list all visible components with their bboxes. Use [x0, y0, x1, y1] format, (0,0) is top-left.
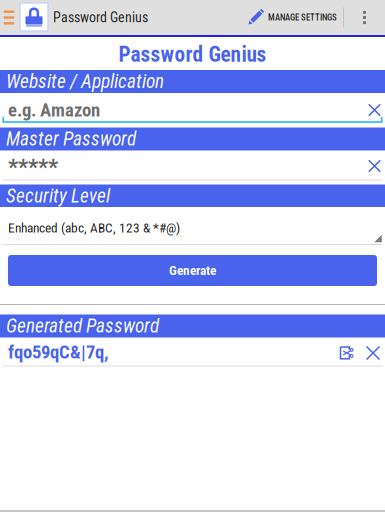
staticText: Generated Password [6, 315, 159, 337]
button[interactable]: MANAGE SETTINGS [248, 0, 354, 35]
staticText: Master Password [6, 128, 136, 150]
button[interactable]: Enhanced (abc, ABC, 123 & *#@) [0, 207, 385, 244]
button[interactable]: Open navigation drawer [0, 0, 18, 35]
button[interactable]: Generate [8, 255, 377, 286]
staticText: Website / Application [6, 70, 164, 93]
button[interactable]: More options [352, 0, 376, 35]
button[interactable]: Clear website [362, 98, 385, 122]
button[interactable]: Clear generated password [361, 341, 385, 365]
button[interactable]: Cut password to clipboard [334, 341, 358, 365]
staticText: Generate [169, 263, 216, 278]
staticText: ***** [8, 154, 58, 180]
button[interactable]: Clear master password [362, 154, 385, 178]
staticText: Password Genius [118, 42, 266, 67]
staticText: Password Genius [53, 9, 148, 26]
staticText: Enhanced (abc, ABC, 123 & *#@) [8, 220, 180, 236]
staticText: MANAGE SETTINGS [268, 12, 337, 23]
staticText: fqo59qC&|7q, [8, 341, 109, 363]
staticText: Security Level [6, 185, 110, 207]
staticText: e.g. Amazon [8, 99, 100, 121]
